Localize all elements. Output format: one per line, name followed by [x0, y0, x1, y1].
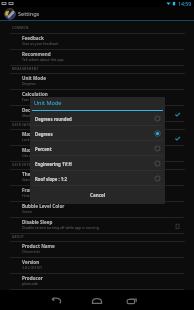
staticText: Tell others about this app: [22, 57, 64, 62]
staticText: plaincode: [22, 281, 39, 286]
staticText: Unit Mode: [34, 99, 62, 107]
staticText: Degrees rounded: [35, 116, 72, 122]
button[interactable]: Back: [45, 290, 67, 310]
staticText: Show one decimal place: [22, 113, 62, 118]
button[interactable]: Theme: [0, 170, 194, 186]
staticText: Percent: [35, 146, 52, 152]
staticText: Decimal Places: [22, 107, 57, 113]
button[interactable]: Frame: [0, 186, 194, 202]
staticText: Version: [22, 259, 40, 265]
staticText: Feedback: [22, 35, 44, 41]
button[interactable]: Producer: [0, 274, 194, 290]
button[interactable]: Unit Mode: [0, 74, 194, 90]
staticText: Cancel: [90, 192, 106, 198]
button[interactable]: Degrees: [30, 126, 165, 141]
staticText: Recommend: [22, 51, 51, 57]
staticText: Degrees: [35, 131, 53, 137]
button[interactable]: Decimal Places: [0, 106, 194, 122]
button[interactable]: Version: [0, 258, 194, 274]
staticText: Unit Mode: [22, 75, 46, 81]
staticText: Calculation: [22, 91, 48, 97]
staticText: Green: [22, 209, 33, 214]
staticText: Bubble Level Color: [22, 203, 65, 209]
staticText: Standard dark theme: [22, 177, 57, 182]
staticText: Hide the outer frame: [22, 193, 57, 198]
staticText: Disable screen turning off while app is …: [22, 225, 99, 230]
button[interactable]: Roof slope : 1:2: [30, 171, 165, 186]
staticText: Disable Sleep: [22, 219, 53, 225]
button[interactable]: Bubble Level Color: [0, 202, 194, 218]
button[interactable]: Max Angle: [0, 130, 194, 146]
button[interactable]: Cancel: [30, 186, 165, 204]
staticText: Use a warning sound: [22, 153, 57, 158]
staticText: MEASUREMENT: [12, 67, 39, 71]
staticText: COMMON: [12, 26, 29, 30]
button[interactable]: Product Name: [0, 242, 194, 258]
staticText: Degrees: [22, 81, 36, 86]
staticText: Clinometer: [22, 249, 41, 254]
button[interactable]: Home: [86, 290, 108, 310]
button[interactable]: Recommend: [0, 50, 194, 66]
staticText: 3.8 2 (9:107): [22, 265, 42, 270]
staticText: Producer: [22, 275, 43, 281]
button[interactable]: Recent apps: [121, 290, 143, 310]
button[interactable]: Degrees rounded: [30, 111, 165, 126]
staticText: Roof slope : 1:2: [35, 176, 67, 182]
staticText: ABOUT: [12, 235, 25, 239]
button[interactable]: Calculation: [0, 90, 194, 106]
staticText: Max Angle: [22, 131, 47, 137]
staticText: Give us your feedback: [22, 41, 59, 46]
staticText: Fast: [22, 97, 29, 102]
button[interactable]: Disable Sleep: [0, 218, 194, 234]
staticText: Lock at 60 degrees: [22, 137, 53, 142]
staticText: Max Warning: [22, 147, 53, 153]
button[interactable]: Max Warning: [0, 146, 194, 162]
button[interactable]: Percent: [30, 141, 165, 156]
button[interactable]: Engineering 1V:H: [30, 156, 165, 171]
staticText: 14:59: [178, 0, 192, 7]
staticText: Theme: [22, 171, 38, 177]
staticText: Product Name: [22, 243, 55, 249]
staticText: Engineering 1V:H: [35, 161, 72, 167]
staticText: USER INTERFACE: [12, 163, 42, 167]
button[interactable]: Feedback: [0, 34, 194, 50]
staticText: Frame: [22, 187, 37, 193]
staticText: USER SAFETY: [12, 123, 35, 127]
staticText: Settings: [18, 10, 40, 18]
